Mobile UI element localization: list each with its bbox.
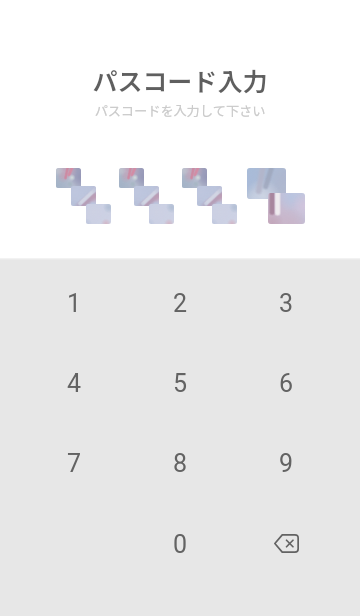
button[interactable]: 1 xyxy=(21,261,127,341)
staticText: 8 xyxy=(173,449,188,478)
button[interactable]: 8 xyxy=(127,421,233,501)
staticText: パスコードを入力して下さい xyxy=(0,101,360,120)
button[interactable]: Backspace xyxy=(233,502,339,582)
staticText: 0 xyxy=(173,530,188,559)
button[interactable]: 7 xyxy=(21,421,127,501)
staticText: 3 xyxy=(279,289,294,318)
staticText: 9 xyxy=(279,449,294,478)
button[interactable]: 5 xyxy=(127,341,233,421)
button[interactable]: 4 xyxy=(21,341,127,421)
staticText: 4 xyxy=(67,369,82,398)
button[interactable]: 0 xyxy=(127,502,233,582)
staticText: 2 xyxy=(173,289,188,318)
button[interactable]: 2 xyxy=(127,261,233,341)
staticText: 5 xyxy=(173,369,188,398)
staticText: パスコード入力 xyxy=(0,62,360,98)
button[interactable]: 9 xyxy=(233,421,339,501)
button[interactable]: 6 xyxy=(233,341,339,421)
staticText: 6 xyxy=(279,369,294,398)
button[interactable]: 3 xyxy=(233,261,339,341)
staticText: 1 xyxy=(67,289,82,318)
staticText: 7 xyxy=(67,449,82,478)
